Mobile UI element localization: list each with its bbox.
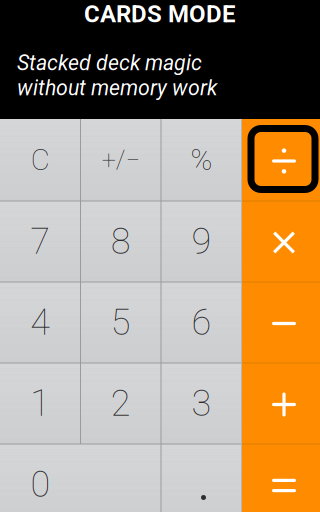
button[interactable]: Multiply	[242, 201, 320, 282]
staticText: %	[190, 143, 212, 177]
staticText: without memory work	[17, 75, 217, 100]
staticText: 3	[191, 382, 211, 425]
staticText: Stacked deck magic	[17, 50, 202, 75]
staticText: 0	[30, 463, 50, 506]
staticText: +/−	[102, 145, 140, 175]
button[interactable]: 7	[0, 201, 80, 282]
staticText: 1	[30, 382, 50, 425]
staticText: 6	[191, 301, 211, 344]
staticText: 9	[191, 220, 211, 263]
button[interactable]: 4	[0, 282, 80, 363]
button[interactable]: 0	[0, 444, 161, 512]
button[interactable]: 9	[161, 201, 242, 282]
button[interactable]: Decimal point	[161, 444, 242, 512]
button[interactable]: 8	[80, 201, 161, 282]
button[interactable]: Clear	[0, 119, 80, 201]
button[interactable]: 5	[80, 282, 161, 363]
button[interactable]: Plus minus	[80, 119, 161, 201]
staticText: 8	[111, 220, 131, 263]
button[interactable]: 6	[161, 282, 242, 363]
staticText: 5	[111, 301, 131, 344]
button[interactable]: 3	[161, 363, 242, 444]
staticText: C	[31, 143, 50, 177]
button[interactable]: 1	[0, 363, 80, 444]
button[interactable]: 2	[80, 363, 161, 444]
staticText: 4	[30, 301, 50, 344]
staticText: 2	[111, 382, 131, 425]
button[interactable]: Equals	[242, 444, 320, 512]
staticText: 7	[30, 220, 50, 263]
button[interactable]: Add	[242, 363, 320, 444]
staticText: CARDS MODE	[84, 0, 236, 28]
button[interactable]: Subtract	[242, 282, 320, 363]
button[interactable]: Percent	[161, 119, 242, 201]
button[interactable]: Divide	[242, 119, 320, 201]
